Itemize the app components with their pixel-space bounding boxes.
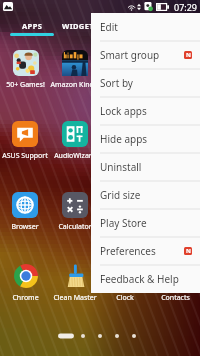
staticText: Amazon Kindle [50,80,100,90]
staticText: N [186,51,191,59]
staticText: Feedback & Help [100,272,179,286]
button[interactable]: 50+ Games! [0,50,50,121]
button[interactable]: ASUS Support [0,121,50,192]
staticText: N [186,247,191,255]
button[interactable]: Sort by [91,69,200,97]
staticText: APPS [22,21,43,31]
staticText: Calendar [110,222,140,232]
staticText: ASUS Support [2,151,48,161]
button[interactable]: AudioWizard [50,121,100,192]
button[interactable] [104,13,152,40]
button[interactable]: Clean Master [50,263,100,334]
button[interactable]: Clock [100,263,150,334]
staticText: 07:29 [174,1,198,13]
staticText: Calculator [58,222,92,232]
button[interactable]: Edit [91,13,200,41]
staticText: Lock apps [100,104,147,118]
staticText: Preferences [100,244,156,258]
button[interactable]: Contacts [150,263,200,334]
button[interactable]: Calculator [50,192,100,263]
staticText: Edit [100,20,118,34]
button[interactable]: Apps [100,50,150,121]
button[interactable]: APPS [8,13,56,40]
button[interactable]: Smart group [91,41,200,69]
staticText: Smart group [100,48,160,62]
staticText: Clean Master [53,293,97,303]
button[interactable]: Chrome [0,263,50,334]
staticText: Play Store [100,216,147,230]
button[interactable]: WIDGETS [56,13,104,40]
staticText: Sort by [100,76,133,90]
staticText: Hide apps [100,132,148,146]
staticText: Grid size [100,188,141,202]
button[interactable]: AudioW [150,50,200,121]
staticText: Browser [11,222,39,232]
button[interactable]: Preferences [91,237,200,265]
staticText: WIDGETS [62,21,99,31]
button[interactable]: Calendar [100,192,150,263]
button[interactable]: Lock apps [91,97,200,125]
button[interactable]: Browser [150,121,200,192]
button[interactable]: Play Store [91,209,200,237]
staticText: 50+ Games! [6,80,45,90]
button[interactable]: Hide apps [91,125,200,153]
staticText: Backup [113,151,138,161]
staticText: Browser [161,151,189,161]
staticText: Uninstall [100,160,142,174]
staticText: Chrome [12,293,39,303]
button[interactable]: Backup [100,121,150,192]
button[interactable]: Feedback & Help [91,265,200,293]
button[interactable]: Uninstall [91,153,200,181]
button[interactable]: Amazon Kindle [50,50,100,121]
staticText: Apps [117,80,134,90]
staticText: AudioWizard [54,151,96,161]
staticText: Contacts [161,293,190,303]
button[interactable]: Grid size [91,181,200,209]
staticText: Clock [116,293,134,303]
button[interactable]: Camera [150,192,200,263]
button[interactable]: Browser [0,192,50,263]
